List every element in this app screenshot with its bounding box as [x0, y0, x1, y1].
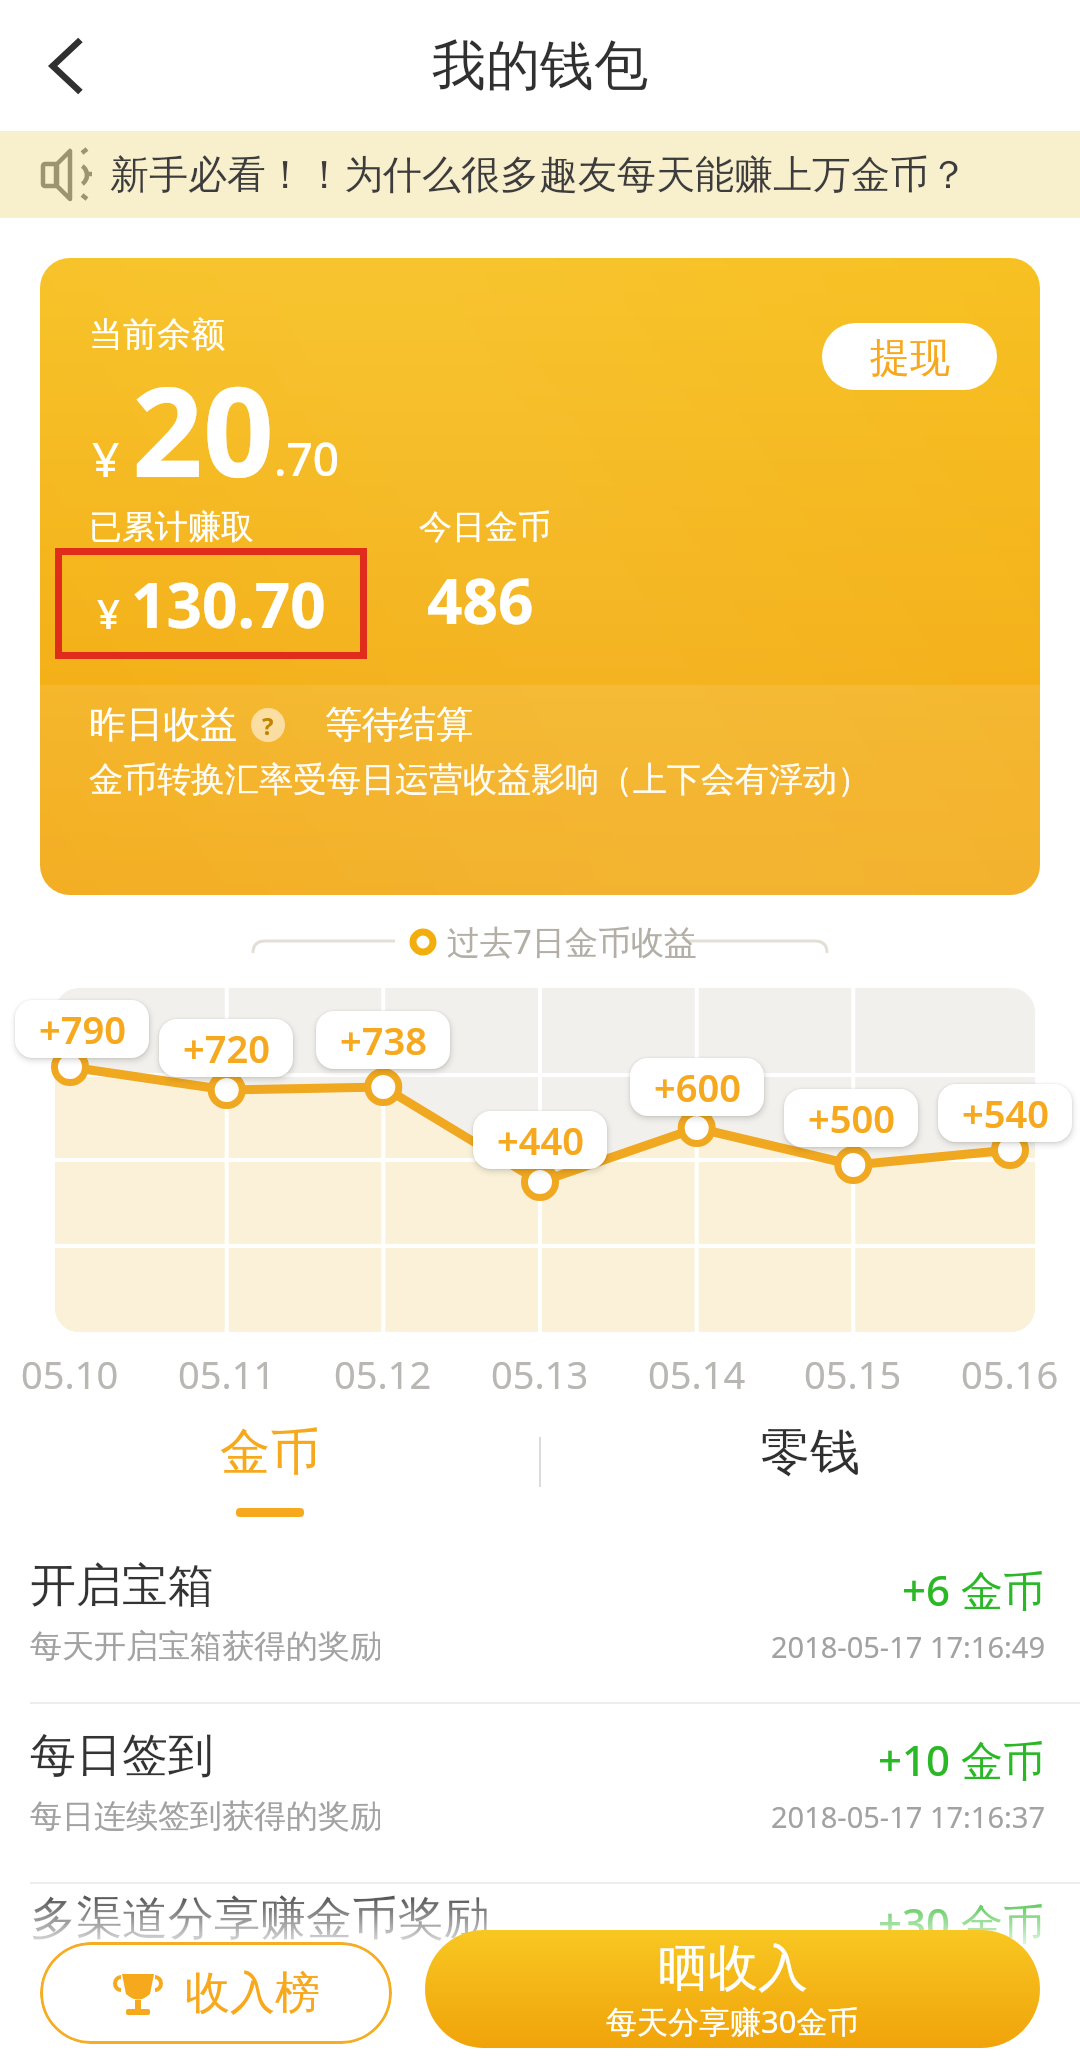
staticText: +720	[183, 1022, 270, 1074]
staticText: ¥	[97, 586, 131, 640]
staticText: 05.13	[491, 1348, 589, 1400]
staticText: ?	[262, 709, 274, 742]
staticText: 金币	[220, 1421, 320, 1484]
staticText: 05.11	[178, 1348, 276, 1400]
staticText: 等待结算	[325, 701, 473, 748]
staticText: 金币转换汇率受每日运营收益影响（上下会有浮动）	[89, 758, 871, 801]
staticText: 我的钱包	[432, 32, 648, 100]
staticText: 每天分享赚30金币	[606, 2000, 859, 2042]
staticText: +6 金币	[902, 1561, 1045, 1618]
staticText: 20	[132, 344, 274, 513]
staticText: 05.15	[804, 1348, 902, 1400]
button[interactable]	[46, 38, 88, 94]
button[interactable]: 晒收入	[425, 1930, 1040, 2048]
staticText: 486	[427, 558, 534, 642]
staticText: +30 金币	[878, 1894, 1045, 1951]
staticText: 零钱	[760, 1421, 860, 1484]
staticText: 2018-05-17 17:16:49	[771, 1627, 1045, 1666]
staticText: 提现	[870, 332, 950, 382]
button[interactable]: 收入榜	[40, 1942, 392, 2044]
staticText: 晒收入	[658, 1937, 808, 2000]
staticText: 05.10	[21, 1348, 119, 1400]
button[interactable]: 多渠道分享赚金币奖励	[30, 1890, 1045, 1951]
staticText: 每日连续签到获得的奖励	[30, 1796, 382, 1836]
staticText: 多渠道分享赚金币奖励	[30, 1890, 490, 1948]
staticText: 130.70	[131, 562, 326, 646]
staticText: 05.16	[961, 1348, 1059, 1400]
staticText: +500	[808, 1092, 895, 1144]
staticText: 当前余额	[89, 313, 225, 356]
staticText: 每天开启宝箱获得的奖励	[30, 1626, 382, 1666]
button[interactable]: 每日签到	[30, 1727, 1045, 1788]
staticText: 今日金币	[419, 506, 551, 548]
staticText: 新手必看！！为什么很多趣友每天能赚上万金币？	[110, 150, 968, 199]
staticText: ¥	[92, 426, 132, 491]
staticText: 05.14	[648, 1348, 746, 1400]
staticText: .70	[274, 427, 340, 490]
staticText: 收入榜	[185, 1965, 320, 2022]
staticText: +10 金币	[878, 1731, 1045, 1788]
button[interactable]: 金币	[150, 1421, 390, 1484]
staticText: 过去7日金币收益	[447, 919, 697, 964]
staticText: +440	[497, 1114, 584, 1166]
staticText: 2018-05-17 17:16:37	[771, 1797, 1045, 1836]
button[interactable]: 新手必看！！为什么很多趣友每天能赚上万金币？	[0, 131, 1080, 218]
button[interactable]: 开启宝箱	[30, 1557, 1045, 1618]
staticText: 开启宝箱	[30, 1557, 214, 1615]
staticText: 每日签到	[30, 1727, 214, 1785]
button[interactable]: 提现	[822, 323, 997, 390]
button[interactable]: 零钱	[690, 1421, 930, 1484]
staticText: 昨日收益	[89, 701, 237, 748]
staticText: +540	[962, 1087, 1049, 1139]
staticText: +790	[39, 1003, 126, 1055]
button[interactable]: 当前余额	[40, 258, 1040, 895]
staticText: +738	[340, 1014, 427, 1066]
staticText: 05.12	[334, 1348, 432, 1400]
staticText: 已累计赚取	[89, 506, 254, 548]
staticText: +600	[654, 1061, 741, 1113]
